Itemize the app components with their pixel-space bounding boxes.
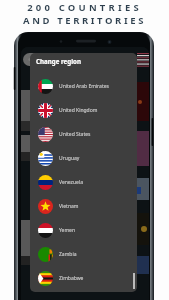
staticText: Yemen	[59, 227, 75, 234]
staticText: United Arab Emirates	[59, 83, 109, 90]
staticText: Vietnam	[59, 203, 79, 210]
button[interactable]: Uruguay	[30, 146, 137, 170]
button[interactable]: Vietnam	[30, 194, 137, 218]
staticText: Zambia	[59, 251, 77, 258]
staticText: AND TERRITORIES	[23, 14, 146, 27]
staticText: 200 COUNTRIES	[27, 1, 142, 14]
button[interactable]: Yemen	[30, 218, 137, 242]
button[interactable]: United States	[30, 122, 137, 146]
staticText: Change region	[36, 57, 81, 65]
staticText: Venezuela	[59, 179, 83, 186]
button[interactable]: Venezuela	[30, 170, 137, 194]
button[interactable]: Zambia	[30, 242, 137, 266]
button[interactable]: United Arab Emirates	[30, 74, 137, 98]
staticText: United Kingdom	[59, 107, 98, 114]
button[interactable]: United Kingdom	[30, 98, 137, 122]
button[interactable]: Back	[23, 53, 47, 66]
button[interactable]: Zimbabwe	[30, 266, 137, 290]
staticText: Zimbabwe	[59, 275, 84, 282]
staticText: United States	[59, 131, 91, 138]
staticText: Uruguay	[59, 155, 80, 162]
